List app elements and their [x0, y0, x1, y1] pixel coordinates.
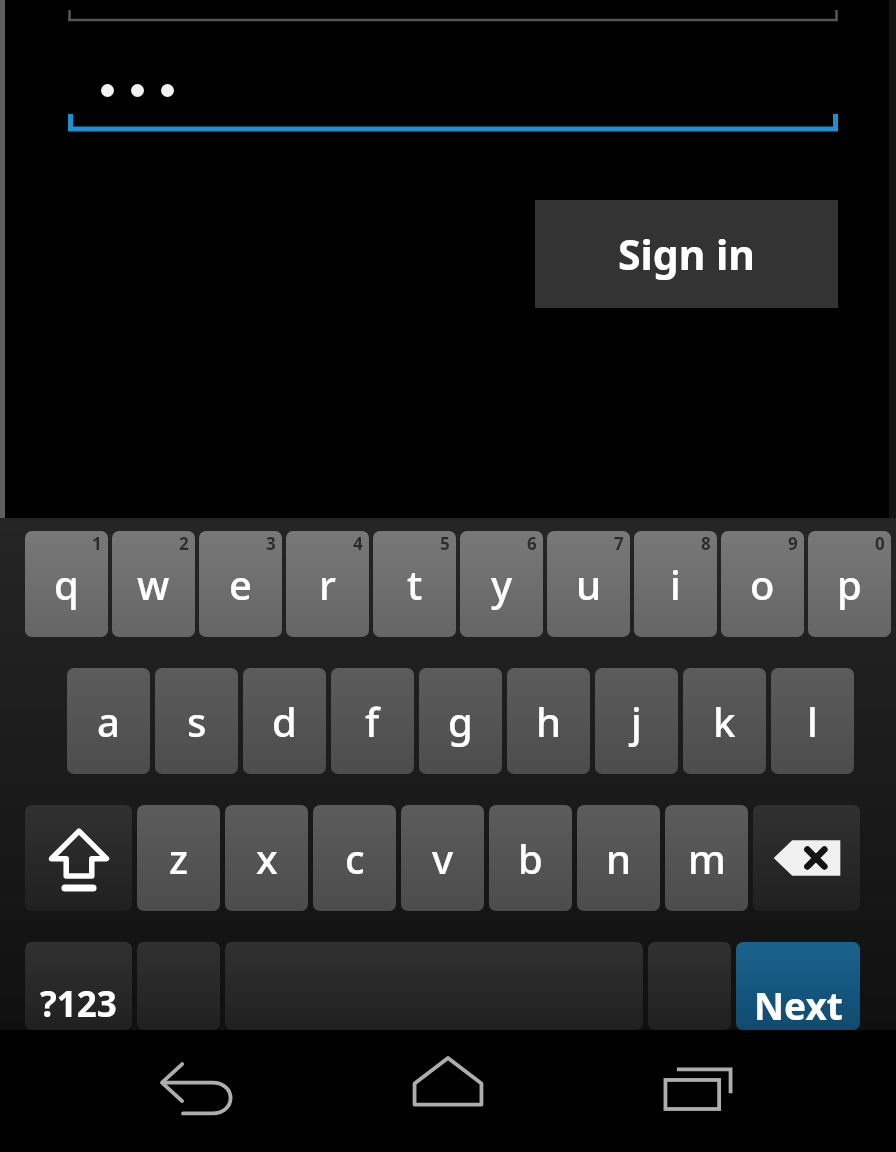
button[interactable]: b	[489, 805, 572, 911]
button[interactable]: o	[721, 531, 804, 637]
staticText: e	[229, 557, 252, 611]
button[interactable]: y	[460, 531, 543, 637]
button[interactable]: Username field	[68, 0, 838, 22]
staticText: j	[631, 694, 642, 748]
staticText: q	[54, 557, 79, 611]
staticText: a	[97, 694, 120, 748]
staticText: Sign in	[618, 226, 755, 282]
staticText: 4	[353, 532, 363, 555]
button[interactable]: Symbols	[25, 942, 132, 1030]
button[interactable]: Recent apps	[603, 1030, 793, 1152]
button[interactable]: Home	[353, 1030, 543, 1152]
staticText: 7	[614, 532, 624, 555]
button[interactable]: Back	[103, 1030, 293, 1152]
button[interactable]: f	[331, 668, 414, 774]
button[interactable]: v	[401, 805, 484, 911]
button[interactable]: d	[243, 668, 326, 774]
button[interactable]: r	[286, 531, 369, 637]
button[interactable]: m	[665, 805, 748, 911]
staticText: s	[187, 694, 207, 748]
button[interactable]: n	[577, 805, 660, 911]
staticText: c	[345, 831, 365, 885]
staticText: y	[491, 557, 513, 611]
button[interactable]: l	[771, 668, 854, 774]
button[interactable]: Password field	[68, 62, 838, 132]
button[interactable]: Emoji	[137, 942, 220, 1030]
button[interactable]: Sign in	[535, 200, 838, 308]
staticText: u	[576, 557, 602, 611]
staticText: 5	[440, 532, 450, 555]
staticText: z	[169, 831, 189, 885]
staticText: r	[319, 557, 336, 611]
staticText: w	[137, 557, 170, 611]
staticText: 6	[527, 532, 537, 555]
staticText: l	[807, 694, 818, 748]
button[interactable]: u	[547, 531, 630, 637]
staticText: n	[606, 831, 632, 885]
staticText: x	[256, 831, 278, 885]
staticText: k	[713, 694, 736, 748]
staticText: 9	[788, 532, 798, 555]
staticText: h	[536, 694, 562, 748]
staticText: b	[518, 831, 543, 885]
button[interactable]: t	[373, 531, 456, 637]
staticText: m	[688, 831, 726, 885]
button[interactable]: a	[67, 668, 150, 774]
button[interactable]: x	[225, 805, 308, 911]
staticText: Next	[754, 980, 843, 1030]
staticText: o	[750, 557, 775, 611]
button[interactable]: Space	[225, 942, 643, 1030]
button[interactable]: Shift	[25, 805, 132, 911]
staticText: 3	[266, 532, 276, 555]
staticText: 8	[701, 532, 711, 555]
button[interactable]: j	[595, 668, 678, 774]
staticText: i	[670, 557, 681, 611]
button[interactable]: Period	[648, 942, 731, 1030]
staticText: 2	[179, 532, 189, 555]
button[interactable]: h	[507, 668, 590, 774]
button[interactable]: w	[112, 531, 195, 637]
button[interactable]: Backspace	[753, 805, 860, 911]
staticText: 0	[875, 532, 885, 555]
staticText: v	[432, 831, 454, 885]
button[interactable]: c	[313, 805, 396, 911]
button[interactable]: i	[634, 531, 717, 637]
staticText: d	[272, 694, 297, 748]
staticText: g	[448, 694, 473, 748]
button[interactable]: g	[419, 668, 502, 774]
staticText: 1	[92, 532, 102, 555]
staticText: p	[837, 557, 862, 611]
staticText: t	[407, 557, 423, 611]
button[interactable]: z	[137, 805, 220, 911]
button[interactable]: Next	[736, 942, 860, 1030]
button[interactable]: s	[155, 668, 238, 774]
button[interactable]: k	[683, 668, 766, 774]
staticText: ?123	[40, 980, 117, 1028]
staticText: f	[365, 694, 380, 748]
button[interactable]: p	[808, 531, 891, 637]
button[interactable]: q	[25, 531, 108, 637]
button[interactable]: e	[199, 531, 282, 637]
